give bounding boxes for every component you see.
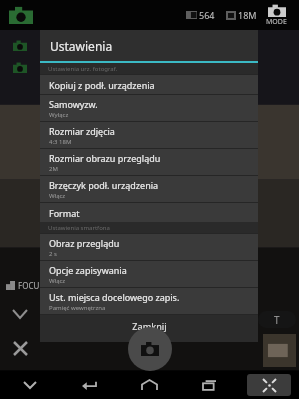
staticText: Samowyzw. — [49, 98, 98, 110]
button[interactable]: Timer — [0, 56, 40, 78]
staticText: FOCU — [18, 280, 40, 291]
staticText: Kopiuj z podł. urządzenia — [49, 79, 155, 91]
staticText: MODE — [266, 17, 287, 27]
staticText: Zamknij — [132, 320, 167, 332]
button[interactable]: Rozmiar obrazu przeglądu — [40, 149, 258, 175]
staticText: Format — [49, 207, 80, 219]
staticText: 2M — [49, 165, 58, 173]
staticText: 564 — [199, 9, 215, 21]
button[interactable]: Gallery — [263, 334, 296, 367]
staticText: Rozmiar obrazu przeglądu — [49, 152, 161, 164]
staticText: Obraz przeglądu — [49, 237, 120, 249]
staticText: 2 s — [49, 250, 57, 258]
button[interactable]: Brzęczyk podł. urządzenia — [40, 176, 258, 202]
staticText: Wyłącz — [49, 111, 69, 119]
button[interactable]: Samowyzw. — [40, 95, 258, 121]
button[interactable]: Zoom — [258, 311, 296, 328]
button[interactable]: Rozmiar zdjęcia — [40, 122, 258, 148]
button[interactable]: Camera — [6, 0, 36, 30]
button[interactable]: Back — [59, 371, 119, 399]
button[interactable]: Kopiuj z podł. urządzenia — [40, 75, 258, 94]
staticText: Ust. miejsca docelowego zapis. — [49, 291, 180, 303]
button[interactable]: Hide — [0, 371, 59, 399]
staticText: Brzęczyk podł. urządzenia — [49, 179, 159, 191]
button[interactable]: Format — [40, 203, 258, 222]
button[interactable]: Shutter — [128, 327, 172, 371]
staticText: 4:3 18M — [49, 138, 72, 146]
staticText: 18M — [238, 9, 257, 21]
staticText: Rozmiar zdjęcia — [49, 125, 115, 137]
staticText: Ustawienia smartfona — [48, 224, 110, 232]
button[interactable]: Ust. miejsca docelowego zapis. — [40, 288, 258, 314]
staticText: T — [274, 313, 280, 327]
button[interactable]: Settings — [0, 331, 40, 365]
button[interactable]: MODE — [266, 4, 287, 27]
button[interactable]: Fullscreen — [247, 374, 291, 396]
button[interactable]: Opcje zapisywania — [40, 261, 258, 287]
button[interactable]: Expand — [0, 297, 40, 331]
button[interactable]: Obraz przeglądu — [40, 234, 258, 260]
button[interactable]: Flash — [0, 34, 40, 56]
staticText: Włącz — [49, 192, 66, 200]
button[interactable]: Zamknij — [40, 315, 258, 337]
staticText: Pamięć wewnętrzna — [49, 304, 106, 312]
staticText: Opcje zapisywania — [49, 264, 127, 276]
button[interactable]: Recents — [179, 371, 239, 399]
button[interactable]: FOCU — [6, 273, 40, 297]
staticText: Włącz — [49, 277, 66, 285]
staticText: Ustawienia urz. fotograf. — [48, 65, 118, 73]
staticText: Ustawienia — [50, 38, 113, 54]
button[interactable]: Home — [119, 371, 179, 399]
